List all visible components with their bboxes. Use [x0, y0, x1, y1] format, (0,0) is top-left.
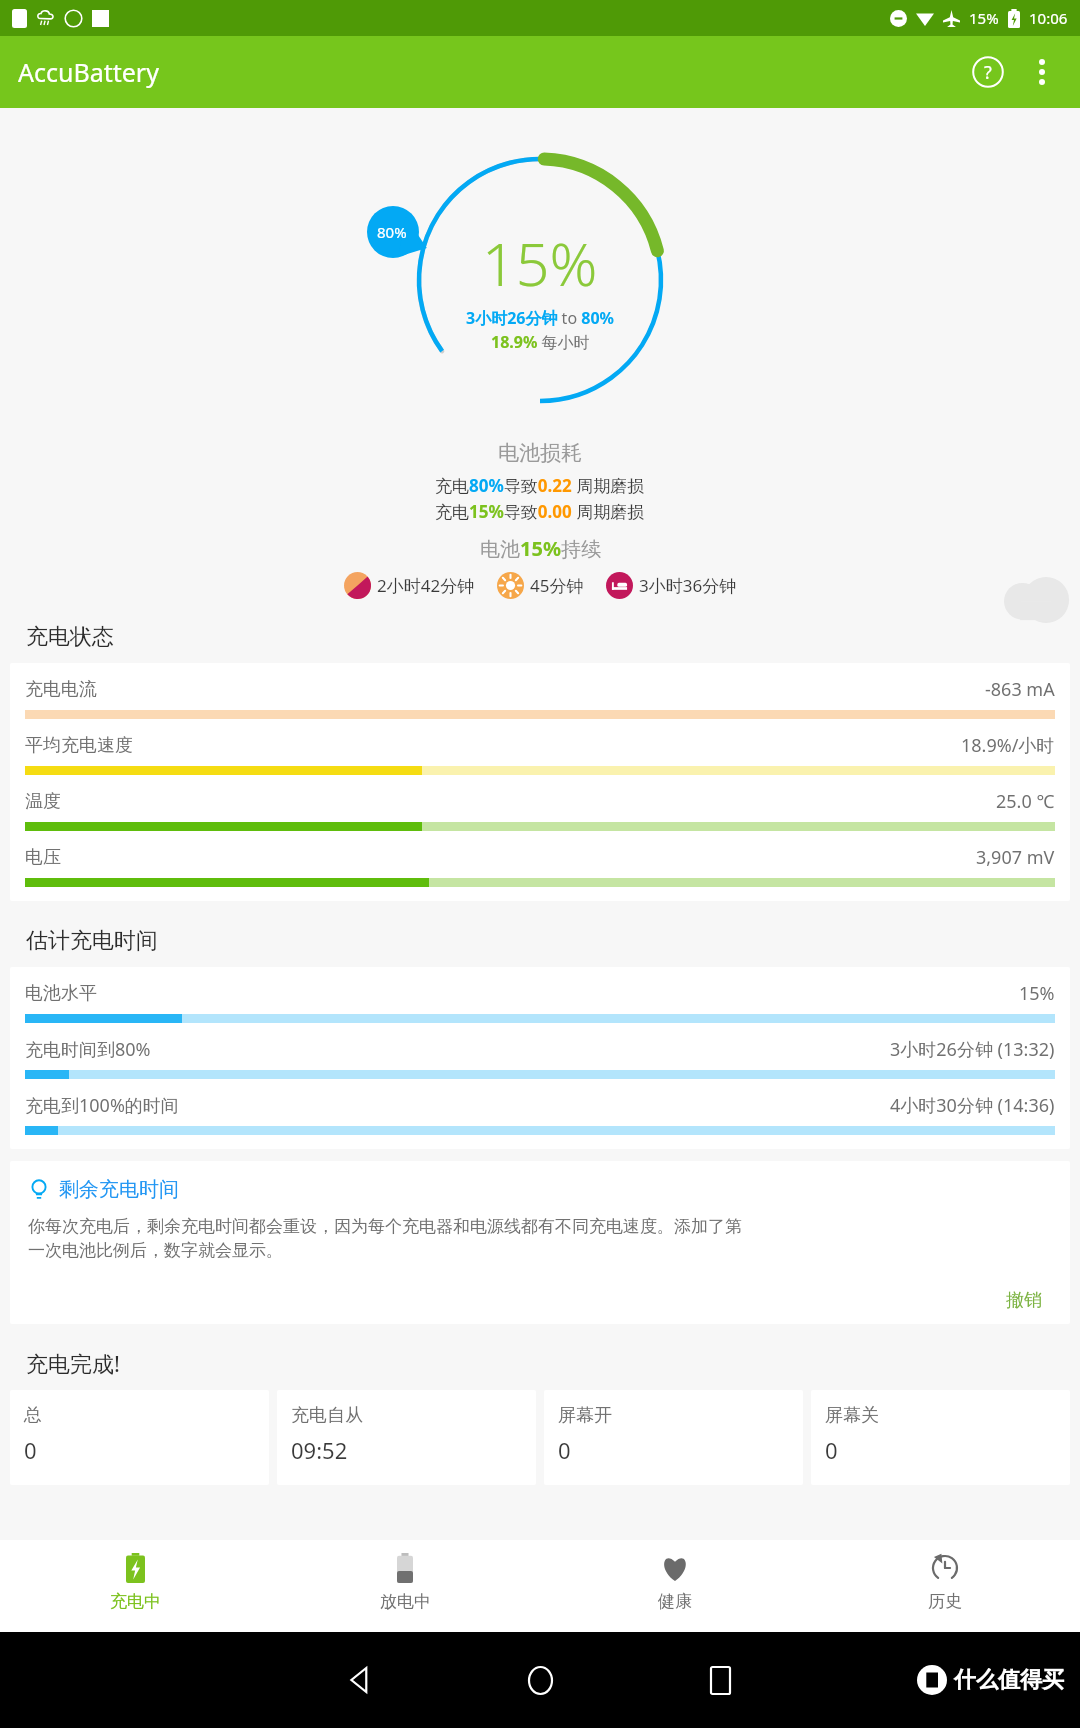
staticText: 18.9% 每小时 [491, 331, 590, 353]
staticText: 2小时42分钟 [377, 574, 475, 597]
staticText: -863 mA [985, 677, 1055, 702]
button[interactable]: 充电时间到80% [25, 1035, 1055, 1081]
staticText: 0 [825, 1435, 838, 1465]
button[interactable]: Back [337, 1656, 385, 1704]
staticText: 电池损耗 [498, 440, 582, 466]
staticText: 估计充电时间 [26, 927, 158, 955]
button[interactable]: 放电中 [270, 1540, 540, 1632]
staticText: 45分钟 [530, 574, 584, 597]
button[interactable]: 屏幕开 [544, 1390, 803, 1485]
staticText: 80% [377, 222, 407, 242]
button[interactable]: 充电自从 [277, 1390, 536, 1485]
button[interactable]: 电压 [25, 843, 1055, 889]
staticText: 放电中 [380, 1591, 431, 1612]
staticText: 18.9%/小时 [961, 733, 1055, 758]
staticText: 剩余充电时间 [59, 1177, 179, 1202]
staticText: 15% [969, 8, 999, 28]
staticText: 健康 [658, 1591, 692, 1612]
staticText: 0 [558, 1435, 571, 1465]
staticText: 总 [24, 1404, 42, 1427]
staticText: 3,907 mV [976, 845, 1055, 870]
staticText: 充电完成! [26, 1348, 120, 1378]
staticText: 充电状态 [26, 623, 114, 651]
button[interactable]: 充电中 [0, 1540, 270, 1632]
staticText: 平均充电速度 [25, 734, 133, 757]
staticText: 15% [1019, 981, 1055, 1006]
staticText: AccuBattery [18, 55, 159, 89]
staticText: 4小时30分钟 (14:36) [890, 1093, 1055, 1118]
button[interactable]: 撤销 [996, 1283, 1052, 1318]
button[interactable]: 充电到100%的时间 [25, 1091, 1055, 1137]
staticText: 充电自从 [291, 1404, 363, 1427]
staticText: 温度 [25, 790, 61, 813]
button[interactable]: 屏幕关 [811, 1390, 1070, 1485]
staticText: 电池15%持续 [480, 535, 601, 562]
button[interactable]: 总 [10, 1390, 269, 1485]
staticText: 电池水平 [25, 982, 97, 1005]
staticText: 充电15%导致0.00 周期磨损 [435, 500, 645, 523]
staticText: 3小时26分钟 (13:32) [890, 1037, 1055, 1062]
staticText: 25.0 ℃ [996, 789, 1055, 814]
staticText: 10:06 [1029, 8, 1068, 28]
staticText: 15% [482, 223, 598, 303]
staticText: 屏幕开 [558, 1404, 612, 1427]
staticText: 充电电流 [25, 678, 97, 701]
button[interactable]: More options [1016, 46, 1068, 98]
staticText: 充电到100%的时间 [25, 1093, 179, 1118]
staticText: 充电时间到80% [25, 1037, 151, 1062]
staticText: 你每次充电后，剩余充电时间都会重设，因为每个充电器和电源线都有不同充电速度。添加… [28, 1216, 742, 1237]
button[interactable]: Recents [696, 1656, 744, 1704]
staticText: 屏幕关 [825, 1404, 879, 1427]
staticText: 什么值得买 [954, 1666, 1064, 1694]
staticText: 3小时26分钟 to 80% [466, 307, 614, 329]
button[interactable]: 充电电流 [25, 675, 1055, 721]
staticText: 撤销 [1006, 1289, 1042, 1312]
button[interactable]: 温度 [25, 787, 1055, 833]
staticText: 电压 [25, 846, 61, 869]
staticText: 09:52 [291, 1435, 348, 1465]
button[interactable]: 电池水平 [25, 979, 1055, 1025]
staticText: ? [984, 60, 992, 85]
button[interactable]: 健康 [540, 1540, 810, 1632]
button[interactable]: 历史 [810, 1540, 1080, 1632]
staticText: 3小时36分钟 [639, 574, 737, 597]
staticText: 充电中 [110, 1591, 161, 1612]
staticText: 一次电池比例后，数字就会显示。 [28, 1240, 283, 1261]
button[interactable]: Home [516, 1656, 564, 1704]
staticText: 充电80%导致0.22 周期磨损 [435, 474, 645, 497]
button[interactable]: 平均充电速度 [25, 731, 1055, 777]
staticText: 0 [24, 1435, 37, 1465]
staticText: 历史 [928, 1591, 962, 1612]
button[interactable]: Help [960, 44, 1016, 100]
